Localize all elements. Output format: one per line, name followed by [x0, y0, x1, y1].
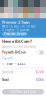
staticText: Visa ···· 4242 [7, 62, 26, 66]
staticText: Have a BitCoin? [2, 39, 32, 44]
staticText: Subtotal [2, 70, 13, 74]
staticText: Total [2, 78, 9, 82]
staticText: $248 [36, 70, 44, 74]
button[interactable]: View rate details [2, 32, 28, 36]
staticText: Apply it to this booking [2, 45, 36, 48]
button[interactable]: Pay with BitCoin [36, 50, 44, 55]
staticText: $266 [36, 78, 44, 82]
staticText: Premier 2 Twin [2, 19, 30, 25]
staticText: Wed 16 Apr – Fri 18 Apr [2, 25, 36, 28]
staticText: Pay with BitCoin [2, 51, 26, 54]
staticText: View rate details [4, 32, 26, 36]
staticText: Confirm and pay [10, 90, 35, 93]
staticText: 2 nights · 2 guests [2, 28, 29, 32]
staticText: Pay with [2, 57, 13, 60]
button[interactable]: Confirm and pay [2, 89, 44, 94]
